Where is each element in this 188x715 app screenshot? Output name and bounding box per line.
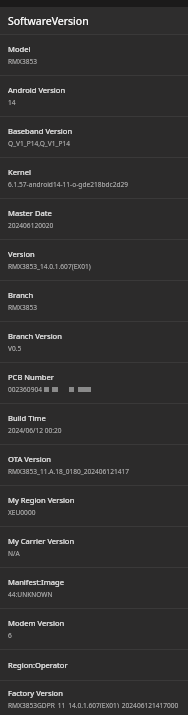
button[interactable]: Branch xyxy=(0,281,188,321)
staticText: 6.1.57-android14-11-o-gde218bdc2d29 xyxy=(8,180,129,189)
button[interactable]: Android Version xyxy=(0,76,188,116)
staticText: 14 xyxy=(8,98,16,107)
button[interactable]: Version xyxy=(0,240,188,280)
staticText: RMX3853_11.A.18_0180_202406121417 xyxy=(8,467,129,476)
button[interactable]: Branch Version xyxy=(0,322,188,362)
staticText: Kernel xyxy=(8,167,32,177)
staticText: RMX3853_14.0.1.607(EX01) xyxy=(8,262,91,271)
button[interactable]: Model xyxy=(0,35,188,75)
staticText: Build Time xyxy=(8,413,46,423)
staticText: Master Date xyxy=(8,208,52,218)
staticText: 44:UNKNOWN xyxy=(8,590,53,599)
staticText: Model xyxy=(8,44,31,54)
staticText: RMX3853GDPR_11_14.0.1.607(EX01)_20240612… xyxy=(8,701,180,708)
staticText: N/A xyxy=(8,549,20,558)
staticText: RMX3853 xyxy=(8,57,38,66)
button[interactable]: My Carrier Version xyxy=(0,527,188,567)
staticText: 202406120020 xyxy=(8,221,54,230)
staticText: 002360904 xyxy=(8,385,42,394)
staticText: Q_V1_P14,Q_V1_P14 xyxy=(8,139,70,148)
staticText: Android Version xyxy=(8,85,66,95)
button[interactable]: Baseband Version xyxy=(0,117,188,157)
button[interactable]: My Region Version xyxy=(0,486,188,526)
staticText: Baseband Version xyxy=(8,126,73,136)
staticText: Branch xyxy=(8,290,34,300)
button[interactable]: Master Date xyxy=(0,199,188,239)
staticText: V0.5 xyxy=(8,344,22,353)
button[interactable]: Kernel xyxy=(0,158,188,198)
staticText: Modem Version xyxy=(8,618,65,628)
button[interactable]: OTA Version xyxy=(0,445,188,485)
staticText: PCB Number xyxy=(8,372,54,382)
staticText: Branch Version xyxy=(8,331,62,341)
staticText: RMX3853 xyxy=(8,303,38,312)
staticText: Manifest:Image xyxy=(8,577,64,587)
staticText: 6 xyxy=(8,631,12,640)
staticText: 2024/06/12 00:20 xyxy=(8,426,62,435)
button[interactable]: Modem Version xyxy=(0,609,188,649)
staticText: Factory Version xyxy=(8,688,63,698)
button[interactable]: Manifest:Image xyxy=(0,568,188,608)
staticText: XEU0000 xyxy=(8,508,36,517)
staticText: OTA Version xyxy=(8,454,51,464)
button[interactable]: Build Time xyxy=(0,404,188,444)
button[interactable]: PCB Number xyxy=(0,363,188,403)
staticText: Version xyxy=(8,249,35,259)
staticText: Region:Operator xyxy=(8,660,68,670)
staticText: My Region Version xyxy=(8,495,75,505)
staticText: My Carrier Version xyxy=(8,536,75,546)
button[interactable]: Region:Operator xyxy=(0,650,188,680)
staticText: SoftwareVersion xyxy=(8,14,89,28)
button[interactable]: Factory Version xyxy=(0,681,188,715)
